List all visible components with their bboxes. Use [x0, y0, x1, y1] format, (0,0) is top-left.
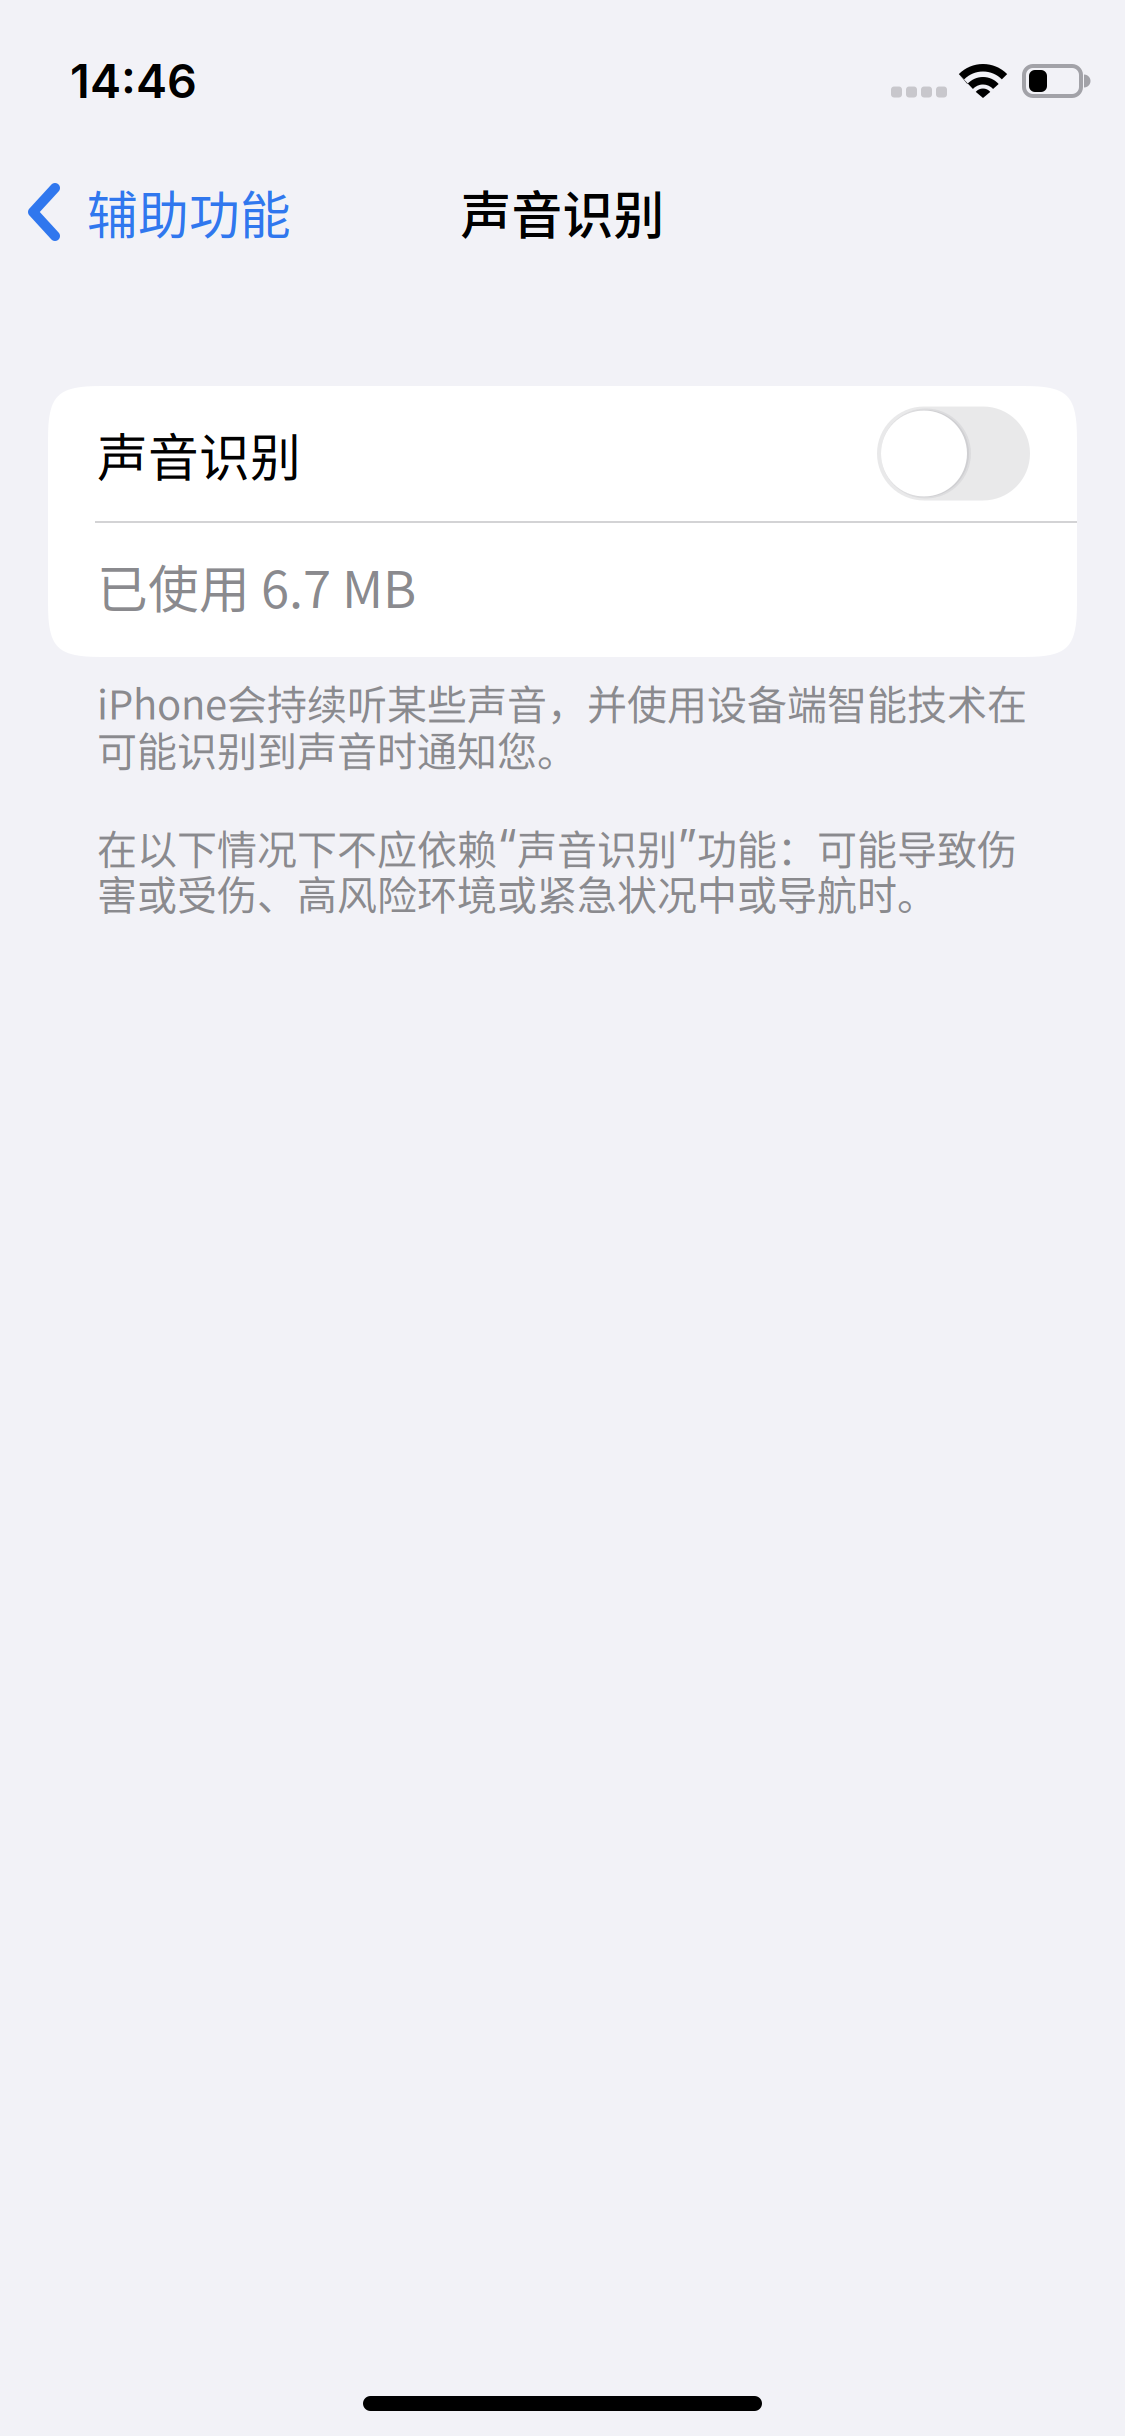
staticText: 在以下情况下不应依赖“声音识别”功能：可能导致伤 害或受伤、高风险环境或紧急状况… [97, 819, 1017, 921]
button[interactable]: 声音识别 [48, 386, 1077, 521]
button[interactable]: 辅助功能 [0, 146, 400, 278]
staticText: iPhone会持续听某些声音，并使用设备端智能技术在 可能识别到声音时通知您。 [97, 673, 1027, 778]
staticText: 声音识别 [97, 418, 301, 491]
staticText: 已使用 6.7 MB [97, 549, 416, 623]
staticText: 14:46 [70, 53, 197, 109]
staticText: 辅助功能 [87, 175, 291, 249]
staticText: 声音识别 [460, 175, 664, 249]
